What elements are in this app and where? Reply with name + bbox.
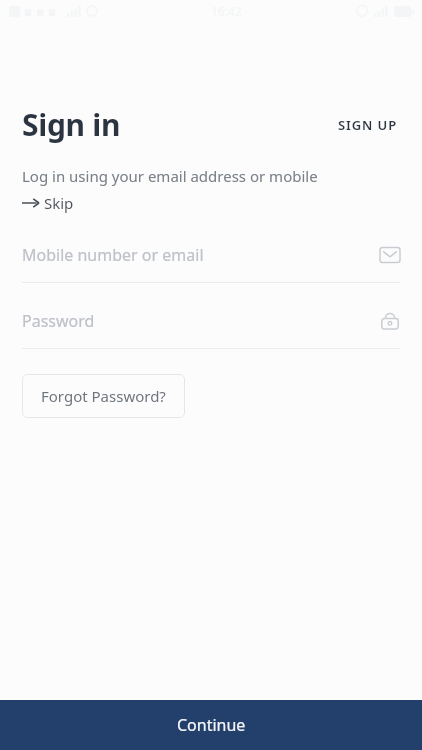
button[interactable]: Skip (22, 191, 74, 215)
button[interactable]: Forgot Password? (22, 374, 185, 418)
staticText: Log in using your email address or mobil… (22, 166, 318, 186)
other: Show password (380, 311, 400, 331)
other: Email (380, 245, 400, 265)
button[interactable]: Continue (0, 700, 422, 750)
button[interactable]: Password (0, 303, 422, 339)
staticText: Skip (44, 193, 74, 213)
staticText: Password (22, 310, 95, 332)
staticText: Mobile number or email (22, 244, 204, 266)
staticText: Sign in (22, 104, 121, 145)
staticText: Forgot Password? (41, 386, 166, 406)
staticText: Continue (177, 714, 246, 736)
staticText: SIGN UP (338, 116, 398, 134)
button[interactable]: Mobile number or email (0, 237, 422, 273)
button[interactable]: SIGN UP (336, 110, 400, 140)
